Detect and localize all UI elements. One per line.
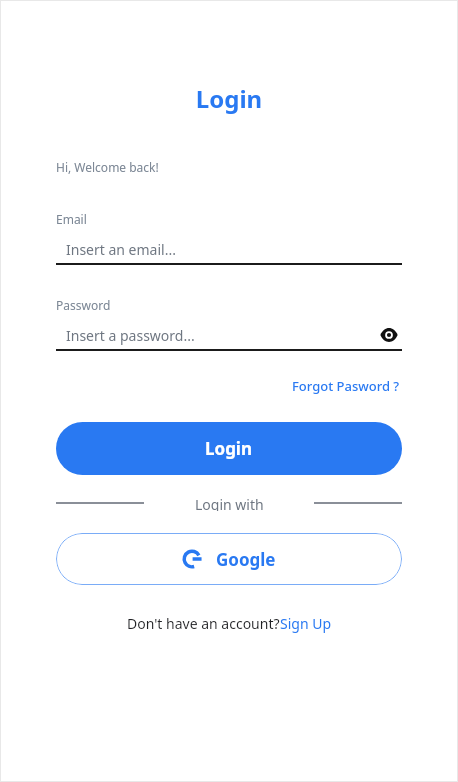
staticText: Login [0,82,458,115]
button[interactable]: Show password [376,322,402,348]
staticText: Insert an email... [66,240,176,259]
button[interactable]: Sign Up [280,614,332,633]
staticText: Email [56,211,87,227]
staticText: Insert a password... [66,326,376,345]
staticText: Password [56,297,111,313]
staticText: Login with [195,495,264,511]
staticText: Hi, Welcome back! [56,159,159,175]
staticText: Google [216,548,276,571]
staticText: Login [205,437,253,460]
staticText: Forgot Pasword ? [292,377,400,395]
button[interactable]: Insert an email... [56,235,402,263]
button[interactable]: Forgot Pasword ? [290,375,402,397]
button[interactable]: Login [56,422,402,475]
staticText: Don't have an account? [127,614,280,633]
button[interactable]: Google [56,533,402,585]
staticText: Sign Up [280,614,332,633]
button[interactable]: Insert a password... [56,321,402,349]
